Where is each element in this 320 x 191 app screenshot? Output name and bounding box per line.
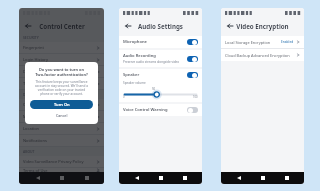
button[interactable]: Voice Control Warning <box>119 104 202 116</box>
staticText: SECURITY <box>23 35 39 40</box>
staticText: Terms of Use <box>23 168 96 172</box>
button[interactable]: Location <box>19 123 104 134</box>
staticText: Camera Access <box>23 102 96 107</box>
staticText: ABOUT <box>23 149 35 154</box>
staticText: Login History <box>23 57 96 62</box>
staticText: Notifications <box>23 138 96 143</box>
button[interactable]: Cancel <box>30 111 93 119</box>
staticText: 0 <box>123 95 125 99</box>
button[interactable]: Back <box>232 172 245 184</box>
staticText: 50 <box>152 87 156 91</box>
button[interactable]: Back <box>130 172 143 184</box>
staticText: 100 <box>193 95 198 99</box>
staticText: Download Permission <box>23 69 96 74</box>
button[interactable]: Turn On <box>30 100 93 109</box>
button[interactable] <box>19 8 104 184</box>
button[interactable]: Home <box>154 172 167 184</box>
button[interactable]: Microphone <box>19 111 104 122</box>
staticText: Control Center <box>39 22 85 30</box>
button[interactable]: Speaker <box>123 72 198 78</box>
button[interactable]: Home <box>256 172 269 184</box>
button[interactable]: Toggle <box>187 107 198 113</box>
button[interactable]: Audio Recording <box>119 50 202 67</box>
button[interactable]: Toggle <box>187 56 198 62</box>
staticText: Two-factor authentication <box>23 81 96 86</box>
button[interactable]: Cloud Backup Advanced Encryption <box>221 49 304 61</box>
staticText: This feature keeps your surveillance acc… <box>30 80 93 96</box>
staticText: Video Encryption <box>236 22 289 30</box>
button[interactable]: Recents <box>280 172 293 184</box>
staticText: Voice Control Warning <box>123 107 168 113</box>
button[interactable]: Video Surveillance Privacy Policy <box>19 156 104 167</box>
button[interactable]: Terms of Use <box>19 168 104 172</box>
button[interactable]: Toggle <box>187 72 198 78</box>
button[interactable]: Microphone <box>119 36 202 48</box>
button[interactable]: Back <box>122 20 133 31</box>
staticText: Microphone <box>123 39 147 45</box>
button[interactable]: Notifications <box>19 135 104 146</box>
staticText: Cancel <box>56 113 68 118</box>
staticText: Video Surveillance Privacy Policy <box>23 159 96 164</box>
button[interactable]: Two-factor authentication <box>19 78 104 89</box>
button[interactable]: Download Permission <box>19 66 104 77</box>
staticText: Preserve audio streams alongside video <box>123 60 180 64</box>
button[interactable]: Login History <box>19 54 104 65</box>
staticText: Audio Recording <box>123 53 156 59</box>
button[interactable]: Back <box>224 20 235 31</box>
staticText: Enabled <box>281 40 294 44</box>
button[interactable]: Home <box>55 172 68 184</box>
button[interactable]: Recents <box>178 172 191 184</box>
staticText: Fingerprint <box>23 45 96 50</box>
staticText: Location <box>23 126 96 131</box>
button[interactable]: Recents <box>80 172 93 184</box>
staticText: Audio Settings <box>138 22 183 30</box>
button[interactable]: Camera Access <box>19 99 104 110</box>
staticText: Microphone <box>23 114 96 119</box>
staticText: DEVICES <box>23 92 37 97</box>
staticText: Speaker <box>123 72 187 78</box>
staticText: Cloud Backup Advanced Encryption <box>225 53 296 58</box>
button[interactable]: Fingerprint <box>19 42 104 53</box>
staticText: Local Storage Encryption <box>225 40 281 45</box>
staticText: Turn On <box>54 102 70 107</box>
button[interactable]: Back <box>31 172 44 184</box>
staticText: Do you want to turn on Two-factor authen… <box>30 67 93 77</box>
button[interactable]: Local Storage Encryption <box>221 36 304 48</box>
button[interactable]: Toggle <box>187 39 198 45</box>
button[interactable] <box>123 91 198 98</box>
staticText: Speaker volume <box>123 81 146 85</box>
button[interactable]: Back <box>22 20 33 31</box>
